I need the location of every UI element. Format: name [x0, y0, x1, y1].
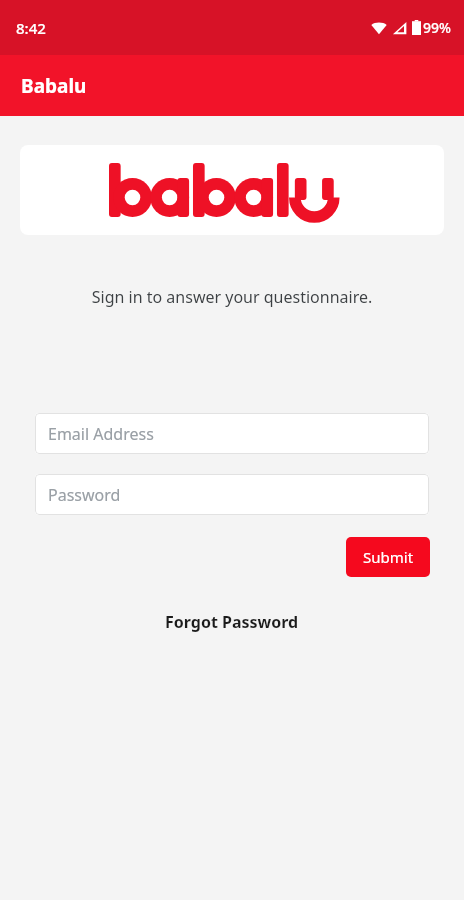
staticText: Email Address: [48, 423, 154, 445]
staticText: Forgot Password: [165, 611, 299, 633]
staticText: Babalu: [21, 73, 87, 99]
staticText: 99%: [423, 18, 451, 37]
button[interactable]: Submit: [346, 537, 430, 577]
button[interactable]: Email Address: [35, 413, 429, 454]
button[interactable]: Forgot Password: [155, 607, 309, 637]
button[interactable]: Password: [35, 474, 429, 515]
staticText: Sign in to answer your questionnaire.: [0, 286, 464, 308]
staticText: 8:42: [16, 18, 46, 38]
staticText: Password: [48, 484, 121, 506]
staticText: Submit: [363, 547, 414, 567]
